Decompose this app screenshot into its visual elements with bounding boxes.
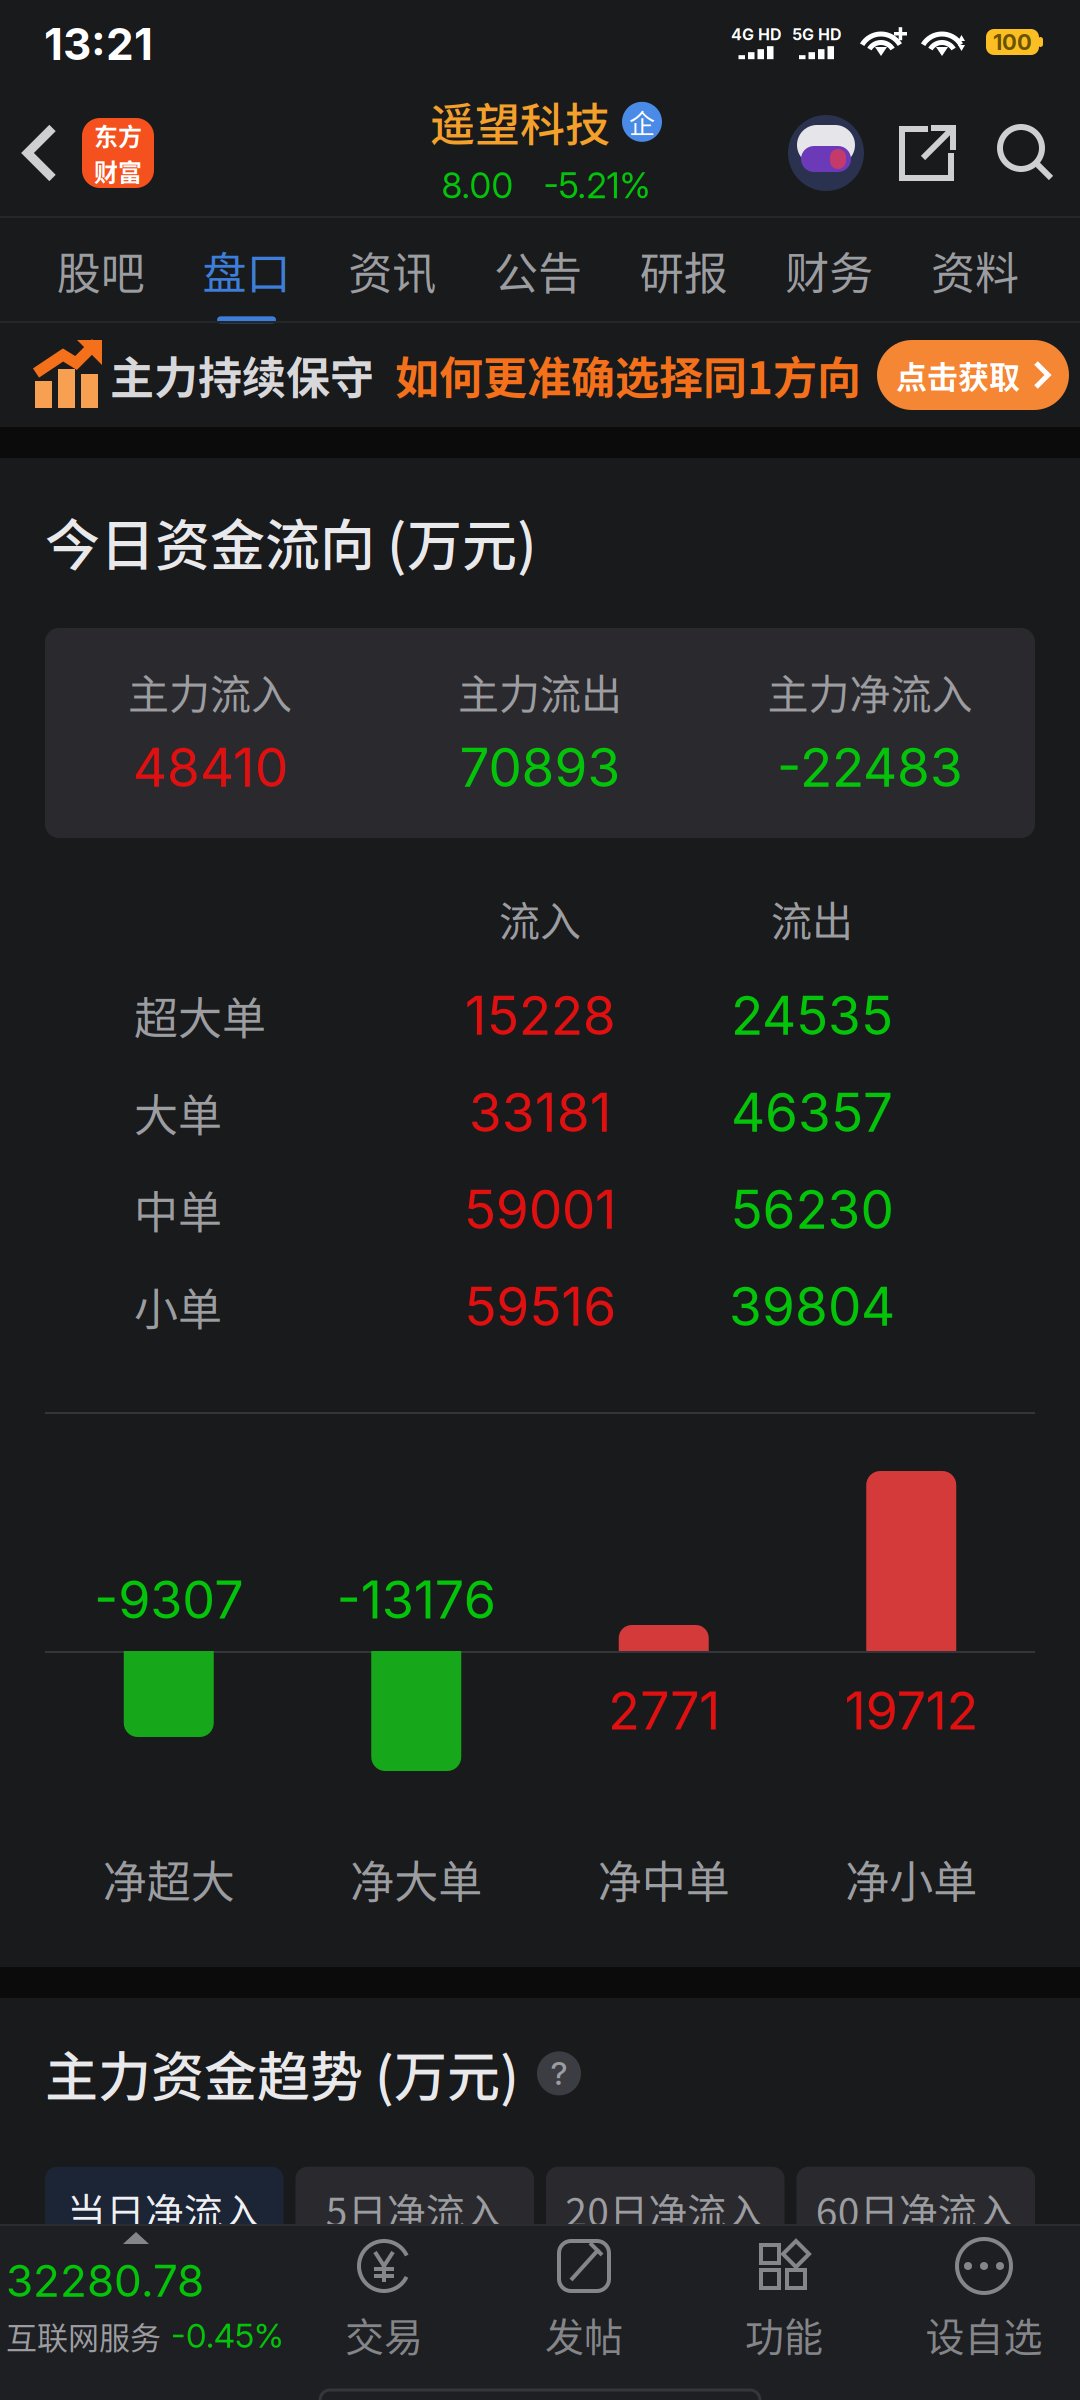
staticText: 59516: [464, 1274, 616, 1338]
button[interactable]: 主力持续保守: [0, 323, 1080, 427]
button[interactable]: 东方财富: [82, 118, 154, 188]
button[interactable]: 60日净流入: [796, 2167, 1035, 2253]
staticText: 净中单: [598, 1847, 730, 1911]
button[interactable]: 公告: [465, 218, 611, 323]
staticText: 流出: [771, 889, 853, 948]
staticText: 如何更准确选择同1方向: [395, 343, 861, 407]
staticText: -22483: [777, 735, 963, 799]
staticText: 主力净流入: [767, 662, 972, 721]
staticText: 发帖: [545, 2306, 623, 2362]
staticText: 8.00: [441, 164, 513, 207]
staticText: 主力持续保守: [110, 343, 374, 407]
staticText: 公告: [494, 239, 582, 302]
staticText: -0.45%: [171, 2316, 284, 2356]
button[interactable]: 股吧: [28, 218, 174, 323]
button[interactable]: 盘口: [174, 218, 319, 323]
staticText: 56230: [730, 1177, 893, 1241]
button[interactable]: 功能: [684, 2224, 884, 2400]
button[interactable]: 资讯: [319, 218, 465, 323]
staticText: 功能: [745, 2306, 823, 2362]
staticText: 企: [629, 103, 655, 141]
staticText: 13:21: [44, 17, 153, 71]
staticText: 59001: [463, 1177, 616, 1241]
staticText: 净超大: [103, 1847, 235, 1911]
button[interactable]: 财务: [756, 218, 902, 323]
staticText: 60日净流入: [816, 2181, 1016, 2238]
button[interactable]: 研报: [611, 218, 756, 323]
staticText: 20日净流入: [565, 2181, 765, 2238]
button[interactable]: 当日净流入: [45, 2167, 283, 2253]
staticText: 24535: [731, 983, 893, 1047]
staticText: 70893: [459, 735, 620, 799]
staticText: ?: [550, 2054, 567, 2093]
staticText: -9307: [94, 1568, 243, 1631]
staticText: 4G HD: [731, 25, 782, 44]
button[interactable]: 返回: [13, 100, 66, 206]
staticText: 点击获取: [896, 353, 1020, 397]
button[interactable]: 分享: [894, 100, 960, 206]
staticText: 33181: [468, 1080, 611, 1144]
staticText: 交易: [345, 2306, 423, 2362]
button[interactable]: 交易: [284, 2224, 484, 2400]
staticText: 东方: [94, 118, 142, 152]
staticText: 48410: [132, 735, 287, 799]
staticText: 互联网服务: [6, 2313, 161, 2358]
staticText: 今日资金流向 (万元): [45, 501, 537, 581]
staticText: -13176: [337, 1568, 496, 1631]
staticText: 设自选: [925, 2306, 1042, 2362]
button[interactable]: 资料: [902, 218, 1048, 323]
staticText: 46357: [731, 1080, 893, 1144]
button[interactable]: 设自选: [884, 2224, 1080, 2400]
staticText: 财富: [94, 153, 142, 188]
staticText: -5.21%: [543, 164, 650, 207]
staticText: 5G HD: [792, 25, 842, 44]
staticText: 主力资金趋势 (万元): [45, 2035, 519, 2112]
staticText: 流入: [499, 889, 581, 948]
staticText: 32280.78: [6, 2254, 204, 2307]
staticText: 主力流出: [458, 662, 622, 721]
staticText: 净小单: [845, 1847, 977, 1911]
staticText: 遥望科技: [430, 89, 610, 154]
staticText: 净大单: [350, 1847, 482, 1911]
button[interactable]: 5日净流入: [295, 2167, 534, 2253]
staticText: 研报: [640, 239, 728, 302]
button[interactable]: 发帖: [484, 2224, 684, 2400]
staticText: 100: [993, 29, 1032, 55]
staticText: 39804: [729, 1274, 895, 1338]
staticText: 当日净流入: [67, 2181, 262, 2238]
staticText: 15228: [464, 983, 615, 1047]
staticText: 5日净流入: [326, 2181, 504, 2238]
staticText: 资讯: [348, 239, 436, 302]
staticText: 小单: [134, 1275, 222, 1338]
staticText: 财务: [785, 239, 873, 302]
staticText: 盘口: [202, 239, 290, 302]
staticText: 中单: [134, 1178, 222, 1241]
button[interactable]: 搜索: [992, 100, 1058, 206]
staticText: 19712: [844, 1679, 978, 1742]
staticText: 超大单: [134, 984, 266, 1047]
staticText: 2771: [608, 1679, 720, 1742]
button[interactable]: 智能助手: [788, 115, 864, 191]
staticText: 资料: [931, 239, 1019, 302]
staticText: 股吧: [57, 239, 145, 302]
button[interactable]: 20日净流入: [546, 2167, 784, 2253]
staticText: 主力流入: [128, 662, 292, 721]
staticText: 大单: [134, 1081, 222, 1144]
